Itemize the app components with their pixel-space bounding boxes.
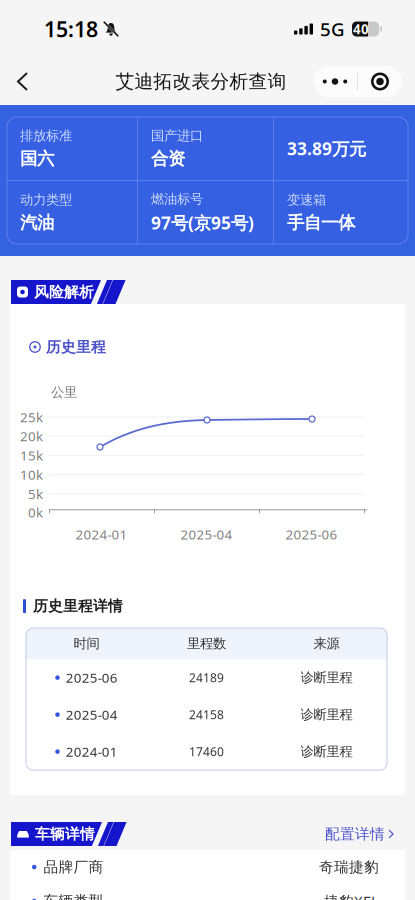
staticText: 风险解析 <box>34 283 94 301</box>
staticText: 车辆详情 <box>35 825 95 843</box>
staticText: 33.89万元 <box>287 137 366 160</box>
staticText: 25k <box>20 408 43 426</box>
staticText: 2025-04 <box>66 706 118 723</box>
staticText: 手自一体 <box>287 212 355 233</box>
staticText: 公里 <box>51 384 77 400</box>
button[interactable]: More options <box>313 66 402 97</box>
staticText: 24189 <box>189 670 224 685</box>
staticText: 97号(京95号) <box>151 211 254 234</box>
staticText: 捷豹XEL <box>324 891 379 900</box>
staticText: 动力类型 <box>20 192 72 208</box>
staticText: 时间 <box>73 635 99 652</box>
staticText: 燃油标号 <box>151 191 203 207</box>
button[interactable]: Back <box>0 63 43 100</box>
staticText: 15k <box>20 446 43 464</box>
staticText: 变速箱 <box>287 192 326 208</box>
staticText: 里程数 <box>187 635 226 652</box>
staticText: 汽油 <box>20 212 54 233</box>
staticText: 0k <box>28 503 43 521</box>
staticText: 10k <box>20 466 43 483</box>
staticText: 历史里程详情 <box>33 597 123 615</box>
staticText: 2025-04 <box>180 525 232 543</box>
staticText: 诊断里程 <box>300 669 352 686</box>
staticText: 奇瑞捷豹 <box>319 858 379 876</box>
staticText: 合资 <box>151 148 185 169</box>
staticText: 配置详情 <box>325 825 385 843</box>
button[interactable]: 配置详情 <box>325 820 415 848</box>
button[interactable]: 车辆类型 <box>10 884 405 900</box>
staticText: 艾迪拓改表分析查询 <box>115 70 286 93</box>
staticText: 24158 <box>189 707 224 722</box>
staticText: 国六 <box>20 148 54 169</box>
staticText: 排放标准 <box>20 128 72 144</box>
staticText: 2025-06 <box>285 525 337 543</box>
staticText: 国产进口 <box>151 128 203 144</box>
staticText: 40 <box>353 20 369 38</box>
staticText: 20k <box>20 427 43 445</box>
staticText: 2024-01 <box>75 525 127 543</box>
staticText: 诊断里程 <box>300 743 352 760</box>
staticText: 15:18 <box>44 15 98 43</box>
staticText: 5G <box>320 17 345 41</box>
button[interactable]: 品牌厂商 <box>10 850 405 884</box>
staticText: 历史里程 <box>46 338 106 356</box>
staticText: 17460 <box>189 744 224 759</box>
staticText: 2024-01 <box>66 743 118 760</box>
staticText: 2025-06 <box>66 669 118 686</box>
staticText: 来源 <box>313 635 339 652</box>
staticText: 车辆类型 <box>43 892 103 900</box>
staticText: 诊断里程 <box>300 706 352 723</box>
staticText: 品牌厂商 <box>43 858 103 876</box>
staticText: 5k <box>28 485 43 503</box>
